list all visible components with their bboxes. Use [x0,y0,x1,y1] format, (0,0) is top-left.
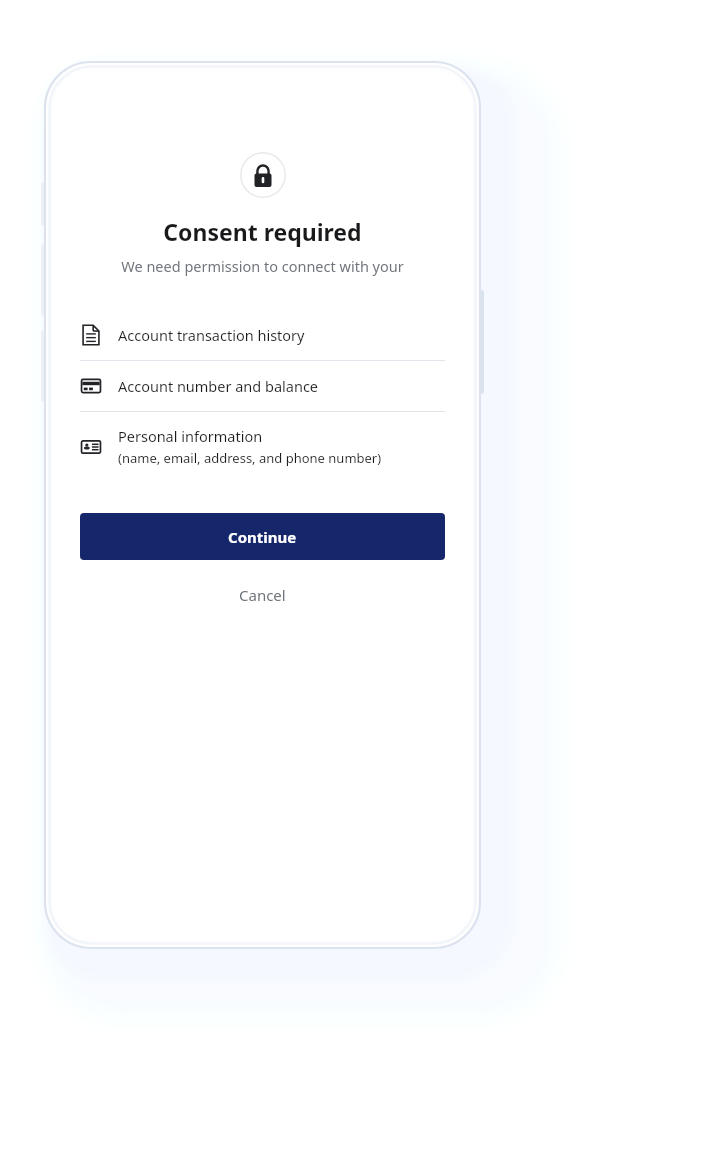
staticText: Consent required [163,216,362,247]
staticText: Account number and balance [118,376,319,396]
staticText: (name, email, address, and phone number) [118,449,382,467]
staticText: Account transaction history [118,325,305,345]
button[interactable]: Document [80,310,445,360]
button[interactable]: Cancel [80,578,445,612]
other: Document [80,324,102,346]
staticText: Personal information [118,426,263,446]
button[interactable]: Continue [80,513,445,560]
button[interactable]: Card [80,361,445,411]
staticText: Cancel [239,585,286,605]
button[interactable]: Personal information [80,412,445,481]
other: Personal information [80,436,102,458]
other: Card [80,375,102,397]
staticText: We need permission to connect with your [121,256,404,276]
staticText: Continue [228,527,297,547]
